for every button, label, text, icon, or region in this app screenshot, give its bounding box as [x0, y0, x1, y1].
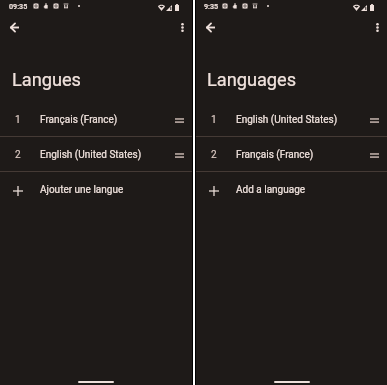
button[interactable]: 2: [0, 138, 192, 172]
staticText: 1: [15, 114, 21, 126]
staticText: Français (France): [236, 149, 314, 161]
staticText: English (United States): [236, 114, 338, 126]
staticText: Français (France): [40, 114, 118, 126]
staticText: Languages: [207, 69, 297, 90]
staticText: Langues: [12, 69, 82, 90]
staticText: 2: [211, 149, 217, 161]
button[interactable]: Add a language: [196, 173, 387, 207]
staticText: 09:35: [9, 2, 28, 10]
staticText: 1: [211, 114, 217, 126]
button[interactable]: 1: [196, 103, 387, 137]
staticText: English (United States): [40, 149, 142, 161]
staticText: 9:35: [204, 2, 219, 10]
button[interactable]: 1: [0, 103, 192, 137]
button[interactable]: Back: [3, 16, 25, 38]
button[interactable]: Back: [199, 16, 221, 38]
button[interactable]: More options: [171, 16, 193, 38]
staticText: Ajouter une langue: [40, 184, 124, 196]
staticText: 2: [15, 149, 21, 161]
staticText: Add a language: [236, 184, 306, 196]
button[interactable]: Ajouter une langue: [0, 173, 192, 207]
button[interactable]: More options: [366, 16, 387, 38]
button[interactable]: 2: [196, 138, 387, 172]
